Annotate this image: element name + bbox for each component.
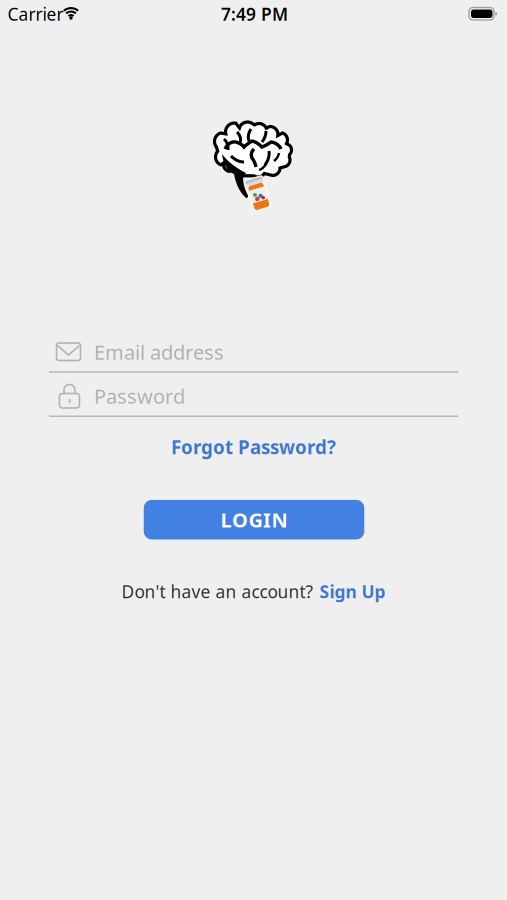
staticText: Don't have an account?: [121, 580, 313, 603]
button[interactable]: Sign Up: [319, 580, 385, 603]
button[interactable]: Email address: [49, 330, 458, 374]
button[interactable]: LOGIN: [144, 500, 364, 539]
button[interactable]: Password: [49, 374, 458, 418]
staticText: LOGIN: [220, 506, 287, 533]
button[interactable]: Forgot Password?: [171, 435, 336, 459]
staticText: Email address: [94, 339, 224, 365]
staticText: 7:49 PM: [221, 2, 288, 25]
staticText: Sign Up: [319, 580, 385, 603]
staticText: Forgot Password?: [171, 435, 336, 459]
staticText: Password: [94, 383, 185, 409]
staticText: Carrier: [7, 2, 63, 25]
